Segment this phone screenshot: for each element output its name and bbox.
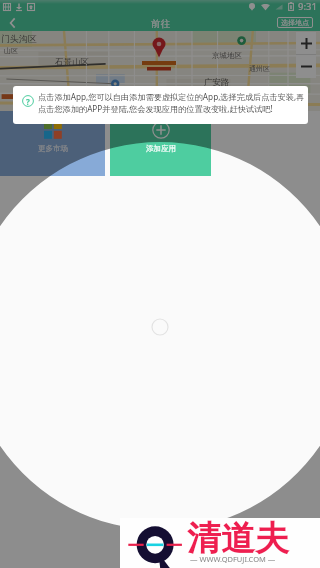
button[interactable]: Back [4,14,22,31]
button[interactable]: Zoom in [296,32,316,54]
staticText: 京城地区 [212,51,242,60]
button[interactable]: 选择地点 [277,17,313,28]
button[interactable]: 添加应用 [110,111,211,176]
staticText: 9:31 [298,0,317,13]
staticText: 点击添加App,您可以自由添加需要虚拟定位的App,选择完成后点击安装,再点击您… [38,91,306,114]
button[interactable]: 更多市场 [0,111,105,176]
staticText: 广安路 [204,77,230,88]
staticText: ? [26,96,30,107]
staticText: 选择地点 [281,18,309,27]
staticText: 山区 [4,46,18,55]
staticText: 添加应用 [146,144,176,153]
staticText: 清道夫 [187,517,289,560]
staticText: 通州区 [249,64,270,73]
staticText: — WWW.QDFUJI.COM — [190,554,276,564]
staticText: 门头沟区 [1,33,37,44]
staticText: 前往 [151,18,170,30]
button[interactable]: Zoom out [296,55,316,78]
button[interactable]: ? [13,86,308,124]
staticText: 更多市场 [38,144,68,153]
staticText: 石景山区 [55,57,89,68]
